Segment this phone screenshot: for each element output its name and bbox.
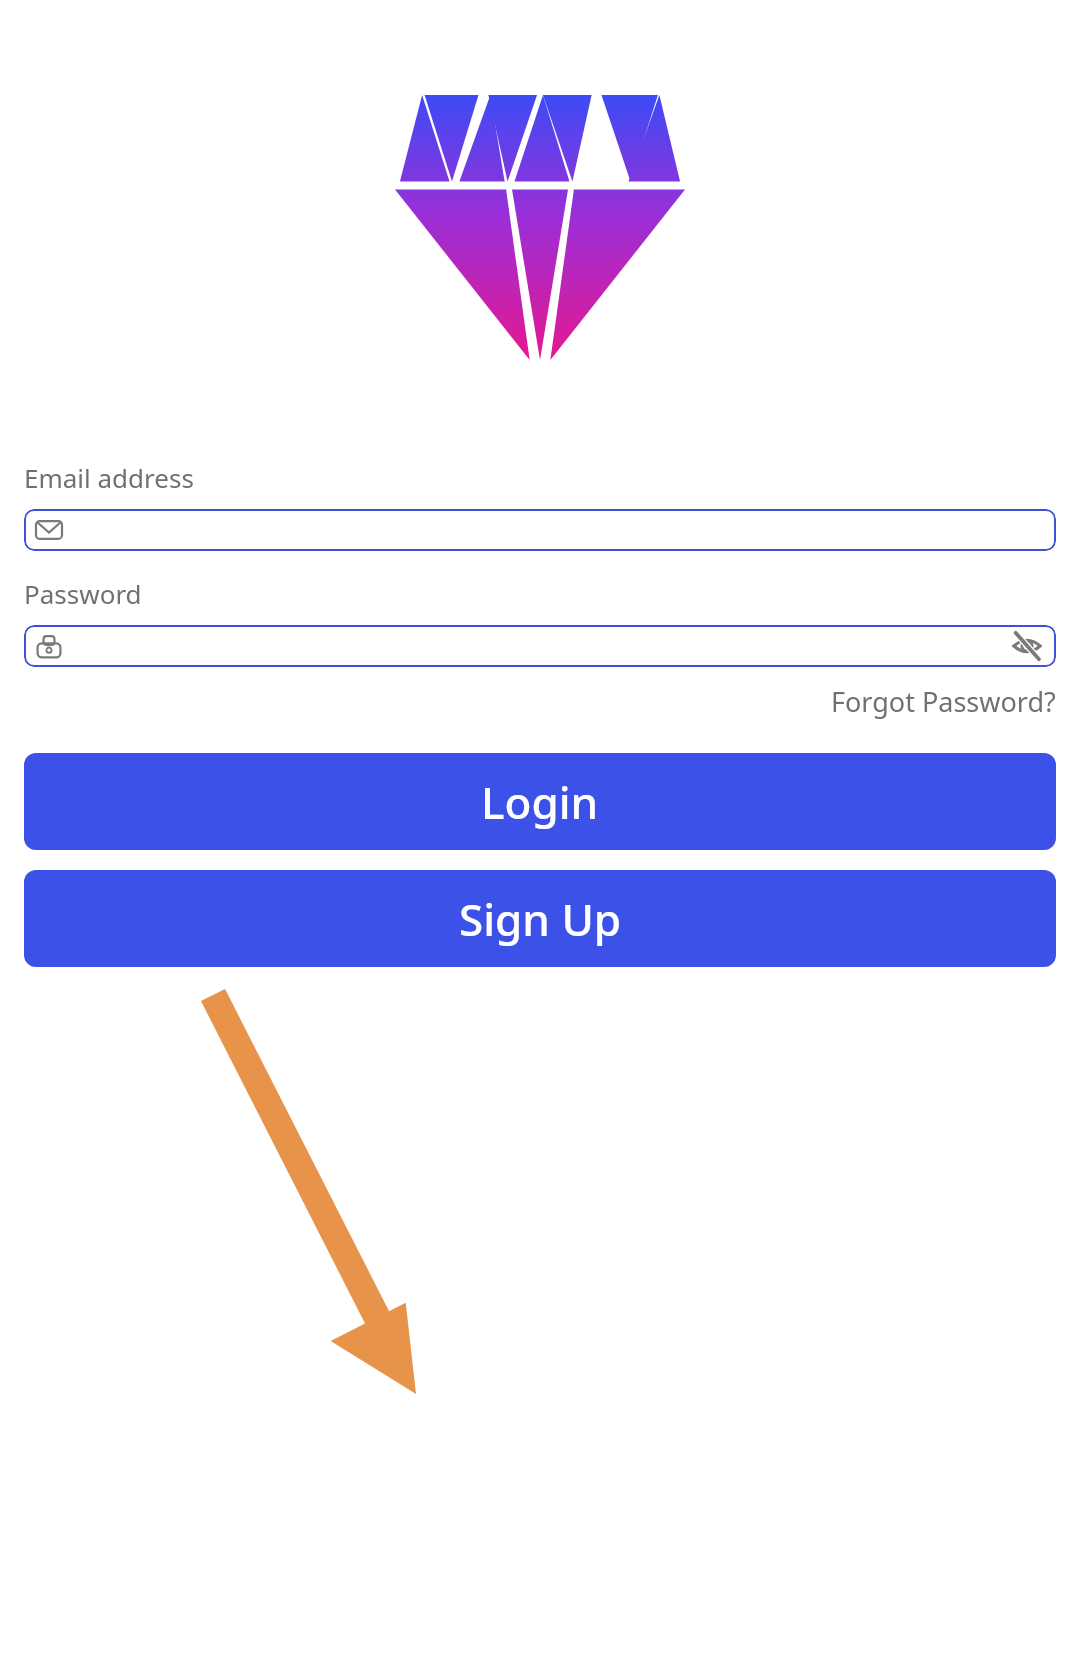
button[interactable]: Show password xyxy=(1010,629,1044,663)
staticText: Password xyxy=(24,576,142,611)
button[interactable]: Forgot Password? xyxy=(831,683,1056,720)
button[interactable]: Login xyxy=(24,753,1056,850)
staticText: Login xyxy=(481,772,599,832)
staticText: Email address xyxy=(24,460,194,495)
button[interactable]: Show password xyxy=(24,625,1056,667)
staticText: Sign Up xyxy=(459,889,622,949)
button[interactable]: Sign Up xyxy=(24,870,1056,967)
button[interactable] xyxy=(24,509,1056,551)
staticText: Forgot Password? xyxy=(831,683,1056,720)
